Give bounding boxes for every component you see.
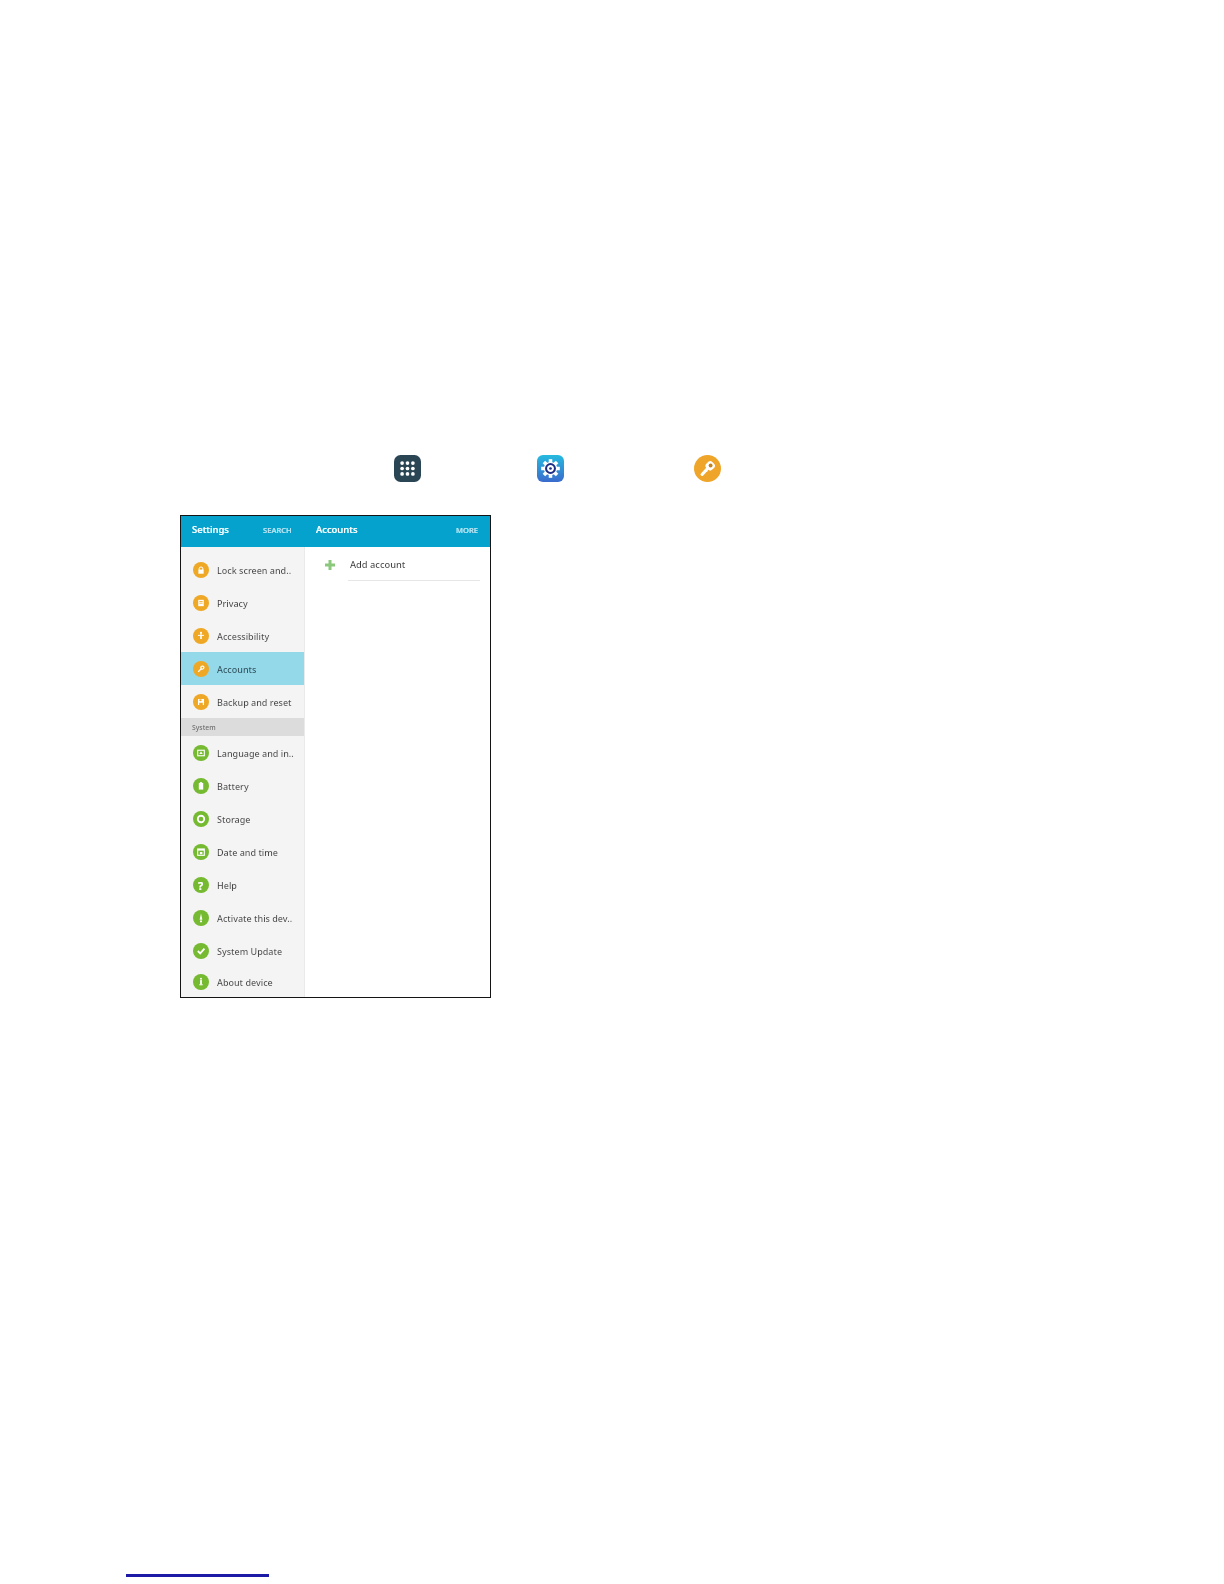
button[interactable]: Accounts xyxy=(181,652,304,685)
staticText: About device xyxy=(217,976,273,988)
button[interactable]: Privacy xyxy=(181,586,304,619)
button[interactable]: Battery xyxy=(181,769,304,802)
staticText: Date and time xyxy=(217,846,278,858)
staticText: Privacy xyxy=(217,597,248,609)
staticText: System Update xyxy=(217,945,283,957)
button[interactable]: Storage xyxy=(181,802,304,835)
button[interactable]: Accessibility xyxy=(181,619,304,652)
button[interactable]: About device xyxy=(181,967,304,997)
staticText: Battery xyxy=(217,780,249,792)
button[interactable]: Date and time xyxy=(181,835,304,868)
button[interactable]: Lock screen and.. xyxy=(181,553,304,586)
button[interactable]: ? xyxy=(181,868,304,901)
button[interactable]: Activate this dev.. xyxy=(181,901,304,934)
button[interactable]: Backup and reset xyxy=(181,685,304,718)
staticText: SEARCH xyxy=(263,525,292,535)
staticText: Settings xyxy=(192,523,229,536)
button[interactable]: Accounts xyxy=(694,455,721,482)
button[interactable]: Settings xyxy=(192,523,229,536)
staticText: Backup and reset xyxy=(217,696,292,708)
button[interactable]: SEARCH xyxy=(263,525,292,535)
staticText: Storage xyxy=(217,813,251,825)
button[interactable]: Add account xyxy=(305,547,490,580)
staticText: Help xyxy=(217,879,237,891)
button[interactable]: Settings xyxy=(537,455,564,482)
staticText: Language and in.. xyxy=(217,747,294,759)
staticText: MORE xyxy=(456,525,478,535)
staticText: ? xyxy=(198,878,204,893)
staticText: System xyxy=(192,723,216,732)
button[interactable]: System Update xyxy=(181,934,304,967)
staticText: Add account xyxy=(350,558,406,571)
button[interactable]: MORE xyxy=(456,525,478,535)
staticText: Lock screen and.. xyxy=(217,564,292,576)
button[interactable]: Apps xyxy=(394,455,421,482)
staticText: Accounts xyxy=(217,663,257,675)
staticText: Accounts xyxy=(316,523,358,536)
staticText: Accessibility xyxy=(217,630,270,642)
button[interactable]: Language and in.. xyxy=(181,736,304,769)
staticText: Activate this dev.. xyxy=(217,912,293,924)
